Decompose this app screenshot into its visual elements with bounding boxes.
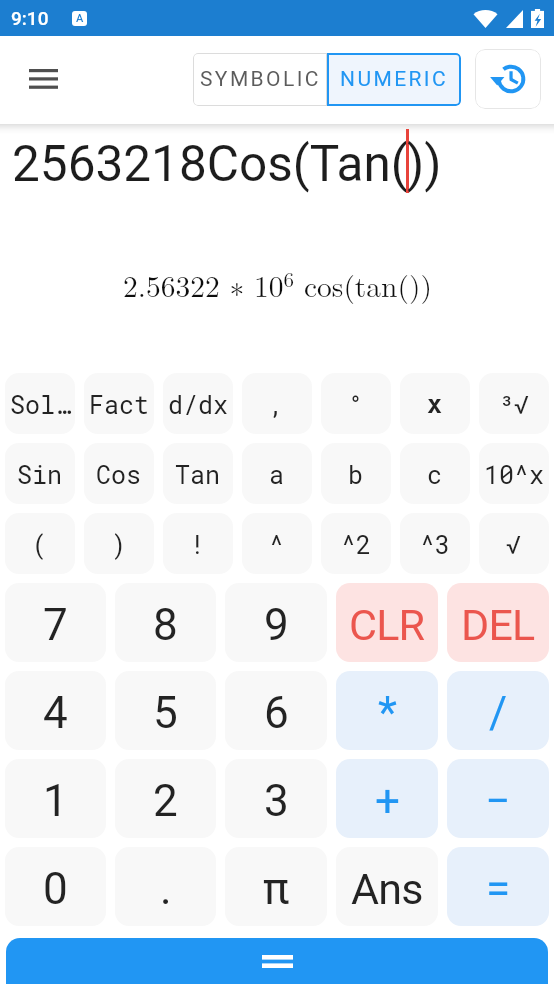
button[interactable]: History xyxy=(475,49,541,109)
staticText: Fact xyxy=(89,388,150,421)
button[interactable]: ^2 xyxy=(321,513,391,574)
button[interactable]: 9 xyxy=(225,583,327,662)
staticText: Ans xyxy=(351,864,423,914)
button[interactable]: 5 xyxy=(115,671,216,750)
staticText: 6 xyxy=(264,687,289,739)
staticText: A xyxy=(76,12,84,25)
staticText: b xyxy=(348,458,364,491)
button[interactable]: 7 xyxy=(5,583,106,662)
button[interactable]: + xyxy=(336,759,438,838)
button[interactable]: c xyxy=(400,443,470,504)
staticText: + xyxy=(375,775,400,827)
staticText: Sin xyxy=(17,458,63,491)
button[interactable]: 0 xyxy=(5,847,106,926)
staticText: 9:10 xyxy=(11,7,49,29)
button[interactable]: * xyxy=(336,671,438,750)
staticText: Sol… xyxy=(10,388,71,421)
staticText: x xyxy=(427,390,443,419)
button[interactable]: DEL xyxy=(447,583,549,662)
button[interactable]: ! xyxy=(163,513,233,574)
button[interactable]: , xyxy=(242,373,312,434)
button[interactable]: ° xyxy=(321,373,391,434)
staticText: 2563218Cos(Tan( xyxy=(12,135,408,193)
staticText: 5 xyxy=(153,687,178,739)
staticText: π xyxy=(263,863,290,915)
button[interactable]: NUMERIC xyxy=(327,53,461,106)
staticText: ! xyxy=(190,528,206,561)
staticText: √ xyxy=(506,528,522,561)
staticText: 4 xyxy=(43,687,68,739)
button[interactable]: 3 xyxy=(225,759,327,838)
button[interactable]: Cos xyxy=(84,443,154,504)
button[interactable]: 1 xyxy=(5,759,106,838)
staticText: )) xyxy=(407,135,442,193)
button[interactable]: . xyxy=(115,847,216,926)
button[interactable]: 6 xyxy=(225,671,327,750)
staticText: , xyxy=(269,388,285,421)
staticText: c xyxy=(427,458,443,491)
button[interactable]: Fact xyxy=(84,373,154,434)
button[interactable]: 10^x xyxy=(479,443,549,504)
staticText: 8 xyxy=(153,599,178,651)
button[interactable]: 2 xyxy=(115,759,216,838)
staticText: Tan xyxy=(175,458,221,491)
button[interactable]: Equals xyxy=(6,938,548,984)
button[interactable]: d/dx xyxy=(163,373,233,434)
staticText: ) xyxy=(111,528,127,561)
button[interactable]: x xyxy=(400,373,470,434)
button[interactable]: = xyxy=(447,847,549,926)
staticText: 2 xyxy=(153,775,178,827)
button[interactable]: − xyxy=(447,759,549,838)
staticText: ( xyxy=(32,528,48,561)
staticText: ^ xyxy=(269,528,285,561)
staticText: ^2 xyxy=(341,528,372,561)
button[interactable]: Tan xyxy=(163,443,233,504)
button[interactable]: ^3 xyxy=(400,513,470,574)
button[interactable]: Sin xyxy=(5,443,75,504)
button[interactable]: / xyxy=(447,671,549,750)
button[interactable]: Ans xyxy=(336,847,438,926)
staticText: 2.56322 ∗ 106 cos(tan()) xyxy=(123,263,432,306)
button[interactable]: Sol… xyxy=(5,373,75,434)
staticText: ^3 xyxy=(420,528,451,561)
staticText: CLR xyxy=(349,600,425,650)
staticText: / xyxy=(489,687,508,739)
staticText: 0 xyxy=(43,863,68,915)
button[interactable]: ) xyxy=(84,513,154,574)
staticText: . xyxy=(160,863,172,915)
button[interactable]: Menu xyxy=(17,54,69,106)
staticText: d/dx xyxy=(168,388,229,421)
button[interactable]: SYMBOLIC xyxy=(193,53,327,106)
button[interactable]: ³√ xyxy=(479,373,549,434)
staticText: 10^x xyxy=(484,458,545,491)
staticText: SYMBOLIC xyxy=(200,67,321,92)
button[interactable]: ( xyxy=(5,513,75,574)
button[interactable]: a xyxy=(242,443,312,504)
button[interactable]: π xyxy=(225,847,327,926)
staticText: 1 xyxy=(43,775,68,827)
button[interactable]: CLR xyxy=(336,583,438,662)
button[interactable]: ^ xyxy=(242,513,312,574)
staticText: NUMERIC xyxy=(340,67,448,92)
staticText: = xyxy=(486,863,511,915)
staticText: 3 xyxy=(264,775,289,827)
staticText: − xyxy=(485,775,511,827)
staticText: a xyxy=(269,458,285,491)
staticText: Cos xyxy=(96,458,142,491)
staticText: ° xyxy=(348,388,364,421)
staticText: * xyxy=(378,687,397,739)
button[interactable]: 8 xyxy=(115,583,216,662)
staticText: 9 xyxy=(264,599,289,651)
button[interactable]: √ xyxy=(479,513,549,574)
button[interactable]: b xyxy=(321,443,391,504)
staticText: 7 xyxy=(43,599,68,651)
staticText: ³√ xyxy=(499,388,530,421)
staticText: DEL xyxy=(461,600,535,650)
button[interactable]: 4 xyxy=(5,671,106,750)
